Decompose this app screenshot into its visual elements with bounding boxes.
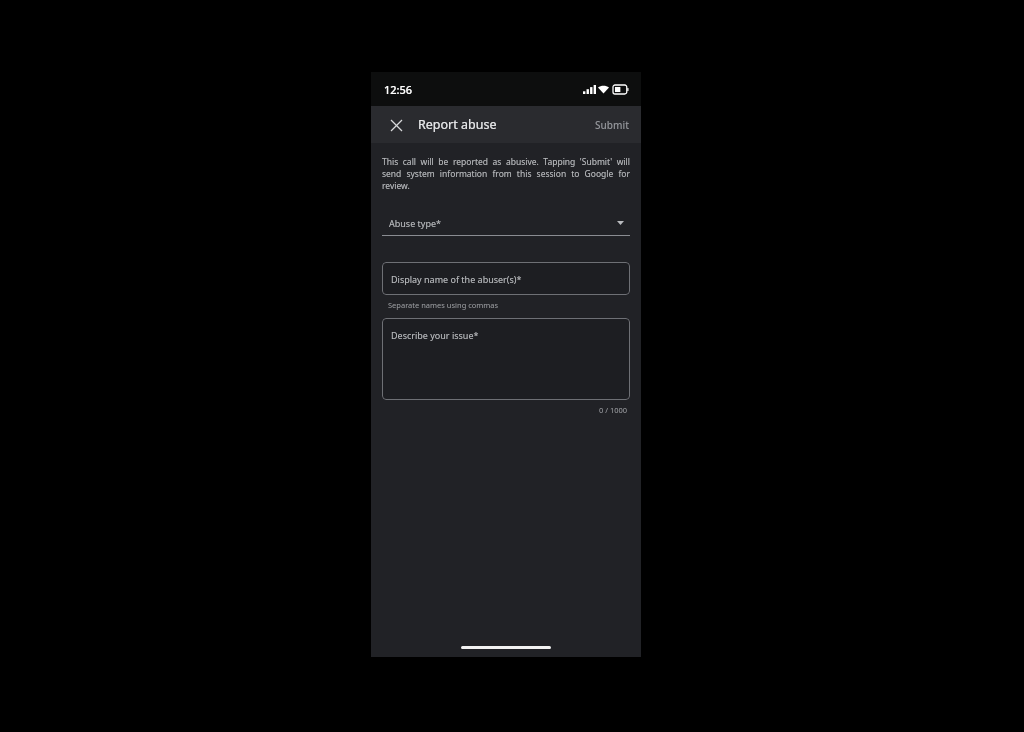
- staticText: 0 / 1000: [599, 405, 628, 415]
- button[interactable]: Submit: [583, 110, 641, 140]
- staticText: Describe your issue*: [391, 329, 479, 341]
- button[interactable]: Close: [385, 114, 407, 136]
- staticText: Display name of the abuser(s)*: [391, 273, 522, 285]
- button[interactable]: Describe your issue*: [382, 318, 630, 400]
- other: Open dropdown: [613, 216, 627, 230]
- staticText: Report abuse: [418, 116, 497, 133]
- staticText: Submit: [595, 118, 629, 132]
- staticText: Separate names using commas: [388, 300, 499, 310]
- staticText: This call will be reported as abusive. T…: [382, 156, 630, 192]
- staticText: 12:56: [384, 82, 413, 97]
- button[interactable]: Display name of the abuser(s)*: [382, 262, 630, 295]
- staticText: Abuse type*: [389, 217, 441, 229]
- button[interactable]: Abuse type*: [382, 210, 630, 236]
